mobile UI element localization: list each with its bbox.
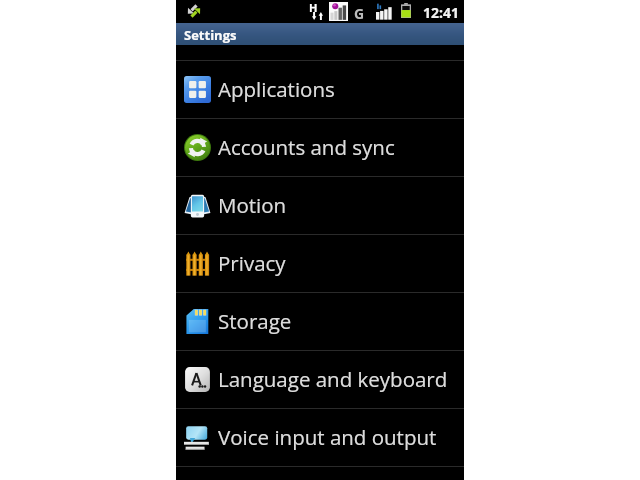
staticText: Accounts and sync: [218, 133, 395, 161]
other: Data transfer activity: [187, 4, 201, 18]
staticText: Motion: [218, 191, 287, 219]
staticText: Applications: [218, 75, 335, 103]
other: HSPA network: [310, 2, 323, 21]
staticText: Storage: [218, 307, 292, 335]
button[interactable]: Accounts and sync: [176, 118, 464, 176]
other: Battery: [401, 3, 411, 18]
staticText: H: [309, 0, 318, 15]
staticText: Language and keyboard: [218, 365, 448, 393]
other: SD card: [329, 2, 348, 21]
staticText: G: [354, 4, 365, 23]
staticText: Voice input and output: [218, 423, 437, 451]
button[interactable]: Privacy: [176, 234, 464, 292]
button[interactable]: Storage: [176, 292, 464, 350]
button[interactable]: Voice input and output: [176, 408, 464, 466]
other: Signal strength: [376, 3, 392, 20]
button[interactable]: Applications: [176, 60, 464, 118]
staticText: 12:41: [423, 3, 460, 22]
button[interactable]: Language and keyboard: [176, 350, 464, 408]
button[interactable]: Motion: [176, 176, 464, 234]
staticText: Settings: [184, 26, 237, 44]
staticText: Privacy: [218, 249, 286, 277]
